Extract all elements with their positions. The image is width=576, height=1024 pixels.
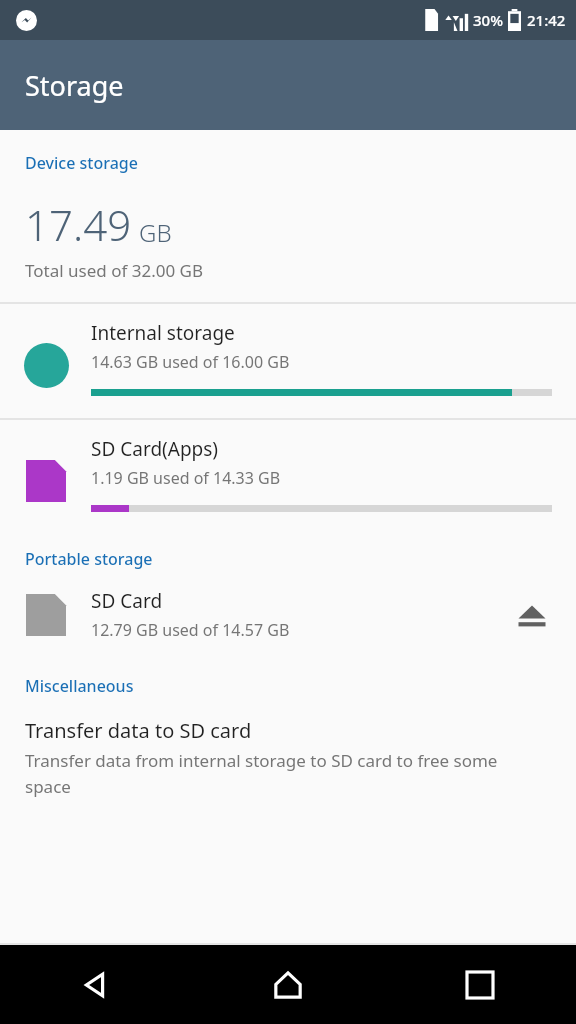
staticText: Miscellaneous: [25, 675, 134, 697]
staticText: Device storage: [25, 152, 138, 174]
staticText: GB: [139, 216, 172, 249]
staticText: Total used of 32.00 GB: [25, 259, 203, 282]
button[interactable]: Eject SD Card: [506, 589, 558, 641]
staticText: 1.19 GB used of 14.33 GB: [91, 467, 281, 489]
button[interactable]: Home: [192, 945, 384, 1024]
button[interactable]: Transfer data to SD card: [0, 697, 576, 816]
staticText: Internal storage: [91, 320, 235, 346]
button[interactable]: Internal storage: [0, 304, 576, 418]
staticText: 14.63 GB used of 16.00 GB: [91, 351, 290, 373]
staticText: 17.49: [25, 196, 132, 253]
staticText: Transfer data from internal storage to S…: [25, 749, 542, 798]
staticText: 30%: [473, 10, 503, 30]
staticText: Transfer data to SD card: [25, 717, 252, 744]
staticText: 12.79 GB used of 14.57 GB: [91, 619, 290, 641]
button[interactable]: Back: [0, 945, 192, 1024]
button[interactable]: SD Card(Apps): [0, 420, 576, 534]
staticText: Portable storage: [25, 548, 153, 570]
staticText: Storage: [25, 67, 124, 104]
button[interactable]: SD Card: [0, 570, 576, 657]
staticText: SD Card(Apps): [91, 436, 219, 462]
button[interactable]: Recent apps: [384, 945, 576, 1024]
staticText: 21:42: [527, 10, 566, 30]
staticText: SD Card: [91, 588, 163, 614]
